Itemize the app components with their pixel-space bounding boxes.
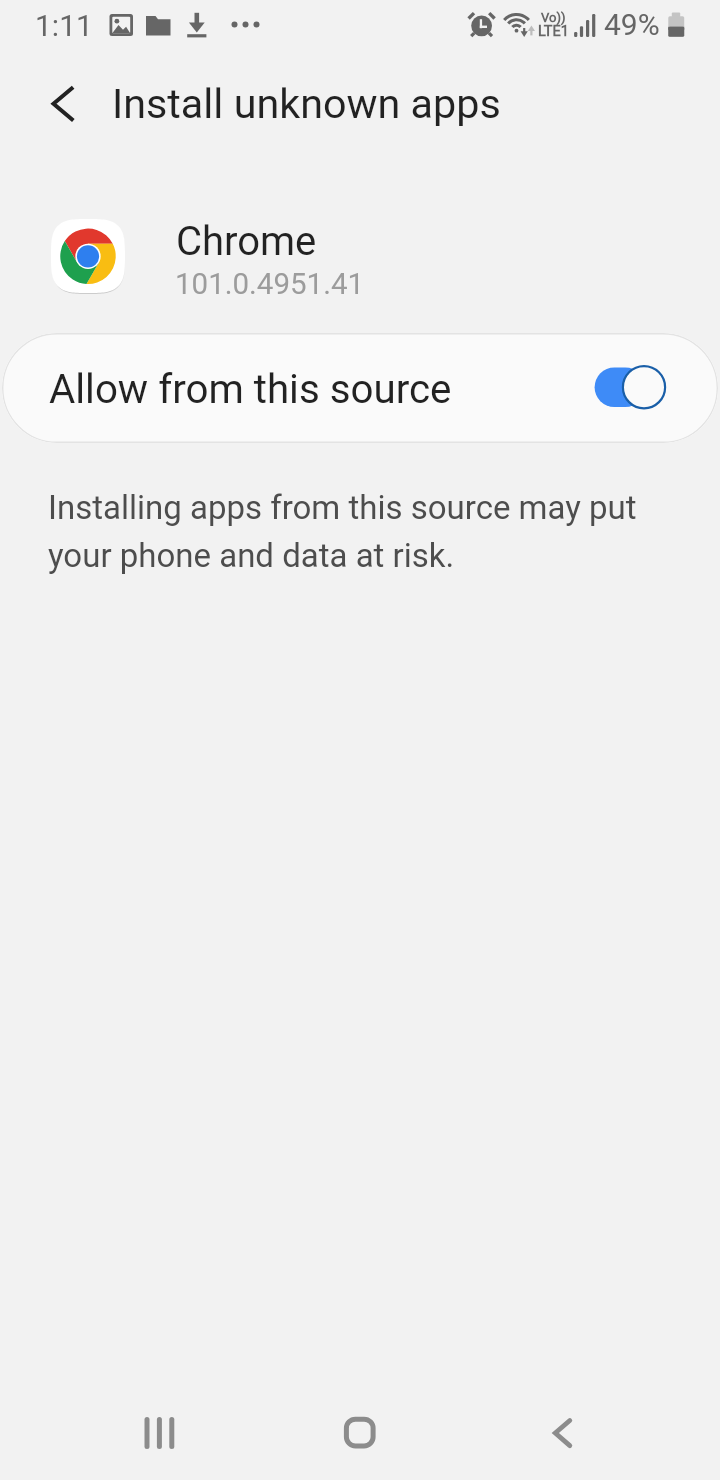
staticText: 49% — [604, 7, 660, 42]
staticText: Install unknown apps — [112, 80, 501, 128]
button[interactable]: Navigate up — [26, 66, 100, 140]
staticText: Installing apps from this source may put… — [48, 488, 673, 575]
staticText: Vo)) — [541, 10, 566, 25]
button[interactable]: Home — [310, 1385, 410, 1480]
button[interactable]: Recent apps — [110, 1385, 210, 1480]
button[interactable]: Back — [511, 1385, 611, 1480]
staticText: 101.0.4951.41 — [175, 267, 365, 302]
staticText: 1:11 — [35, 8, 93, 43]
staticText: Allow from this source — [49, 366, 452, 413]
staticText: Chrome — [176, 218, 317, 265]
button[interactable]: Allow from this source — [2, 333, 718, 443]
staticText: LTE1 — [538, 23, 569, 40]
